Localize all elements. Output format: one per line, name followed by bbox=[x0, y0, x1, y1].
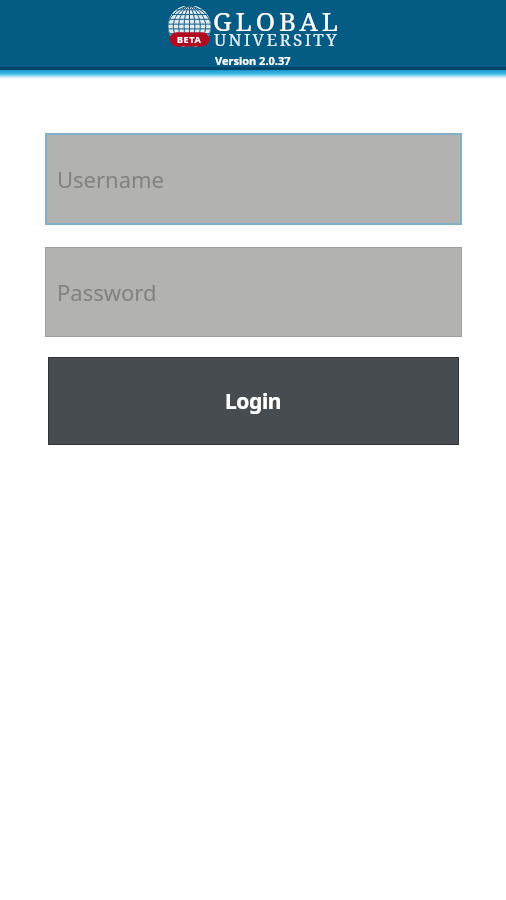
staticText: Login bbox=[225, 387, 282, 416]
staticText: BETA bbox=[177, 33, 202, 45]
other: Global University logo bbox=[168, 6, 211, 47]
staticText: Password bbox=[57, 277, 157, 307]
staticText: UNIVERSITY bbox=[214, 28, 340, 51]
staticText: Username bbox=[57, 164, 165, 194]
button[interactable]: Username bbox=[45, 133, 462, 225]
button[interactable]: Password bbox=[45, 247, 462, 337]
staticText: GLOBAL bbox=[213, 3, 343, 38]
staticText: Version 2.0.37 bbox=[215, 53, 291, 68]
button[interactable]: Login bbox=[48, 357, 459, 445]
